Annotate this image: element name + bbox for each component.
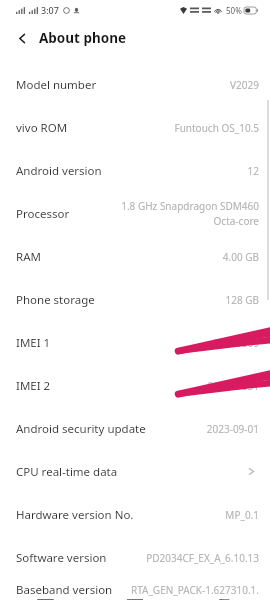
staticText: Processor (16, 206, 70, 222)
button[interactable]: Hardware version No. (0, 493, 270, 536)
staticText: Software version (16, 550, 107, 566)
staticText: RAM (16, 249, 41, 265)
button[interactable]: IMEI 2 (0, 364, 270, 407)
button[interactable]: Phone storage (0, 278, 270, 321)
staticText: Baseband version (16, 582, 113, 598)
button[interactable]: Software version (0, 536, 270, 579)
button[interactable]: Android security update (0, 407, 270, 450)
staticText: Android version (16, 163, 102, 179)
staticText: V2029 (230, 78, 259, 92)
staticText: 128 GB (225, 293, 259, 307)
button[interactable]: IMEI 1 (0, 321, 270, 364)
staticText: Octa-core (213, 214, 259, 228)
staticText: CPU real-time data (16, 464, 118, 480)
button[interactable]: Back (10, 26, 34, 50)
button[interactable]: Android version (0, 149, 270, 192)
staticText: 86769509 (213, 336, 259, 350)
staticText: 1.8 GHz Snapdragon SDM460 (121, 199, 259, 213)
staticText: About phone (39, 29, 127, 47)
staticText: Android security update (16, 421, 146, 437)
button[interactable]: Baseband version (0, 579, 270, 600)
staticText: IMEI 1 (16, 335, 51, 351)
button[interactable]: vivo ROM (0, 106, 270, 149)
staticText: Model number (16, 77, 97, 93)
staticText: 2023-09-01 (206, 422, 259, 436)
staticText: 12 (247, 164, 259, 178)
staticText: PD2034CF_EX_A_6.10.13 (146, 551, 259, 565)
staticText: Phone storage (16, 292, 95, 308)
staticText: RTA_GEN_PACK-1.627310.1. (130, 583, 259, 597)
staticText: Hardware version No. (16, 507, 134, 523)
staticText: vivo ROM (16, 120, 68, 136)
button[interactable]: CPU real-time data (0, 450, 270, 493)
button[interactable]: RAM (0, 235, 270, 278)
staticText: 867695051 (207, 379, 259, 393)
button[interactable]: Model number (0, 63, 270, 106)
staticText: 4.00 GB (222, 250, 259, 264)
staticText: MP_0.1 (225, 508, 259, 522)
staticText: 3:07 (41, 4, 59, 16)
staticText: Funtouch OS_10.5 (174, 121, 259, 135)
staticText: IMEI 2 (16, 378, 51, 394)
staticText: 50% (226, 5, 242, 16)
button[interactable]: Processor (0, 192, 270, 235)
